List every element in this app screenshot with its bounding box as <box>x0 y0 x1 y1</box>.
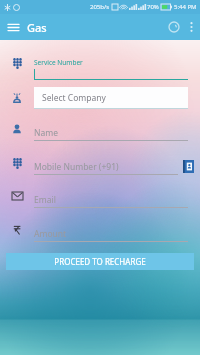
button[interactable]: Name <box>0 117 200 141</box>
button[interactable]: Amount <box>0 218 200 242</box>
staticText: Select Company <box>42 92 106 104</box>
staticText: Gas <box>27 20 47 35</box>
staticText: Name <box>34 127 58 139</box>
staticText: 70% <box>147 3 159 11</box>
button[interactable]: PROCEED TO RECHARGE <box>6 253 194 270</box>
button[interactable]: Service Number <box>0 46 200 80</box>
button[interactable]: Select Company <box>0 87 200 109</box>
staticText: PROCEED TO RECHARGE <box>54 256 146 267</box>
button[interactable]: More options <box>186 15 200 39</box>
staticText: Mobile Number (+91) <box>34 161 119 173</box>
button[interactable]: Email <box>0 184 200 208</box>
staticText: Service Number <box>34 58 83 67</box>
staticText: Email <box>34 194 56 206</box>
staticText: 205b/s <box>90 3 110 11</box>
button[interactable]: Open navigation drawer <box>0 16 27 39</box>
staticText: 5:44 PM <box>174 3 197 11</box>
button[interactable]: Mobile Number (+91) <box>0 151 200 175</box>
button[interactable]: Pick from contacts <box>181 158 196 175</box>
button[interactable]: Refresh <box>162 15 186 39</box>
staticText: Amount <box>34 228 67 240</box>
